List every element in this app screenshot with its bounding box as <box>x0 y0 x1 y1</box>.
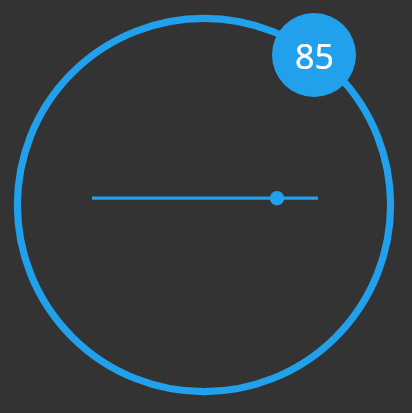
button[interactable]: Linear slider <box>0 0 412 413</box>
button[interactable]: Circular level ring, 85 percent <box>0 0 412 413</box>
button[interactable]: Value handle, 85 <box>0 0 412 413</box>
staticText: 85 <box>295 33 334 79</box>
